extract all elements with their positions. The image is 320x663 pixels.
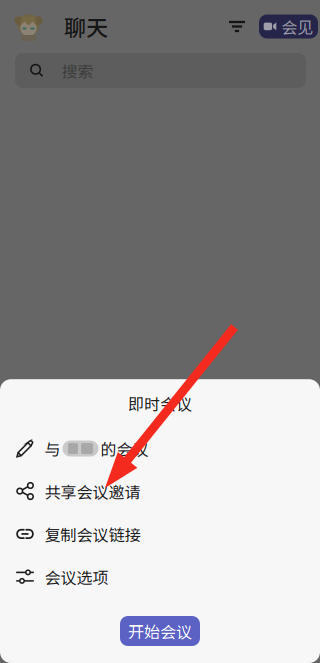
- staticText: 共享会议邀请: [44, 480, 140, 503]
- staticText: 搜索: [62, 59, 94, 82]
- button[interactable]: 共享会议邀请: [0, 470, 320, 513]
- staticText: 即时会议: [128, 392, 192, 415]
- staticText: 会见: [281, 15, 313, 38]
- button[interactable]: 与: [0, 427, 320, 470]
- staticText: 复制会议链接: [44, 522, 140, 546]
- button[interactable]: 会议选项: [0, 555, 320, 598]
- staticText: 开始会议: [128, 619, 192, 643]
- staticText: 会议选项: [44, 565, 108, 588]
- button[interactable]: 个人资料: [14, 11, 43, 41]
- button[interactable]: 开始会议: [120, 616, 200, 646]
- button[interactable]: 会见: [259, 14, 318, 38]
- staticText: 的会议: [100, 437, 148, 460]
- button[interactable]: 筛选: [221, 10, 253, 42]
- staticText: 与: [44, 437, 60, 460]
- staticText: 聊天: [64, 11, 108, 42]
- button[interactable]: 复制会议链接: [0, 513, 320, 555]
